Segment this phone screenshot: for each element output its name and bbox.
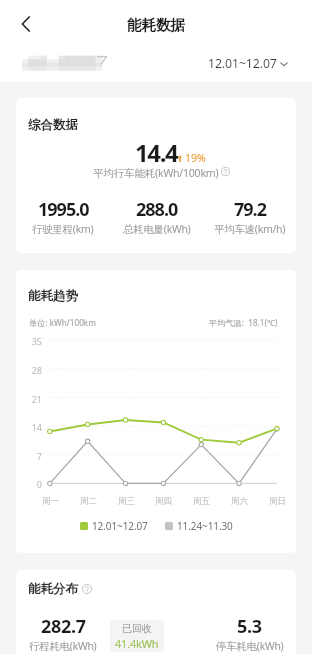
staticText: 总耗电量(kWh) <box>123 222 191 236</box>
staticText: 周五 <box>193 496 210 507</box>
staticText: 综合数据 <box>28 117 78 133</box>
staticText: 周四 <box>155 496 172 507</box>
button[interactable]: Back <box>12 10 40 38</box>
staticText: 79.2 <box>234 197 266 222</box>
staticText: 288.0 <box>136 197 178 222</box>
staticText: 能耗趋势 <box>28 288 78 304</box>
staticText: 停车耗电(kWh) <box>216 639 284 653</box>
staticText: 11.24~11.30 <box>177 519 233 533</box>
staticText: 14.4 <box>135 136 178 169</box>
staticText: 19% <box>185 151 206 165</box>
staticText: 能耗分布 <box>28 581 78 597</box>
staticText: 41.4kWh <box>115 636 159 651</box>
staticText: 0 <box>36 478 42 490</box>
staticText: 已回收 <box>122 622 152 635</box>
staticText: 行驶里程(km) <box>32 222 94 236</box>
staticText: 单位: kWh/100km <box>29 317 96 328</box>
staticText: 14 <box>31 421 42 433</box>
staticText: 35 <box>31 335 42 347</box>
staticText: 平均气温: 18.1(℃) <box>209 317 278 328</box>
staticText: 周二 <box>80 496 97 507</box>
staticText: 12.01~12.07 <box>92 519 148 533</box>
staticText: 周一 <box>42 496 59 507</box>
staticText: 282.7 <box>41 614 86 639</box>
staticText: 能耗数据 <box>127 16 185 34</box>
staticText: 周六 <box>231 496 248 507</box>
staticText: 平均行车能耗(kWh/100km) <box>93 166 219 180</box>
staticText: 21 <box>31 393 42 405</box>
staticText: 周三 <box>118 496 135 507</box>
staticText: 平均车速(km/h) <box>214 222 286 236</box>
staticText: 行程耗电(kWh) <box>29 639 97 653</box>
staticText: 5.3 <box>237 614 262 639</box>
staticText: 12.01~12.07 <box>208 55 277 72</box>
button[interactable]: 12.01~12.07 <box>208 55 288 72</box>
staticText: 7 <box>36 450 42 462</box>
staticText: 1995.0 <box>38 197 89 222</box>
staticText: 周日 <box>269 496 286 507</box>
staticText: 28 <box>31 364 42 376</box>
